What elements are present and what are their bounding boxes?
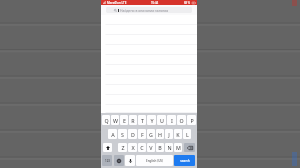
button[interactable]: 123 <box>102 155 112 166</box>
staticText: Z <box>121 144 125 151</box>
button[interactable]: Найдено в описании занятия <box>106 7 192 13</box>
button[interactable] <box>101 45 197 55</box>
button[interactable]: Y <box>147 115 156 125</box>
button[interactable] <box>101 95 197 105</box>
staticText: B <box>158 144 162 151</box>
staticText: K <box>176 131 180 138</box>
button[interactable]: E <box>120 115 128 125</box>
button[interactable] <box>101 35 197 45</box>
staticText: МегаФон LTE <box>107 1 127 5</box>
staticText: F <box>141 131 144 138</box>
staticText: J <box>168 131 170 138</box>
staticText: W <box>113 117 118 124</box>
staticText: A <box>111 131 115 138</box>
button[interactable]: J <box>165 129 173 139</box>
staticText: G <box>149 131 153 138</box>
button[interactable]: English (US) <box>136 155 173 166</box>
button[interactable]: C <box>138 143 146 152</box>
staticText: 123 <box>105 159 110 163</box>
button[interactable]: B <box>156 143 164 152</box>
staticText: P <box>190 117 194 124</box>
staticText: N <box>167 144 172 151</box>
staticText: D <box>131 131 135 138</box>
button[interactable]: Z <box>118 143 127 152</box>
staticText: M <box>176 144 181 151</box>
staticText: Y <box>150 117 154 124</box>
button[interactable]: Backspace <box>184 143 195 152</box>
button[interactable] <box>101 55 197 65</box>
staticText: Найдено в описании занятия <box>120 8 169 13</box>
button[interactable]: H <box>156 129 164 139</box>
button[interactable]: Q <box>102 115 110 125</box>
button[interactable]: U <box>157 115 166 125</box>
button[interactable]: Shift <box>103 143 112 152</box>
staticText: 15:44 <box>151 1 159 5</box>
button[interactable] <box>101 65 197 75</box>
staticText: L <box>186 131 189 138</box>
button[interactable]: O <box>177 115 186 125</box>
staticText: C <box>140 144 144 151</box>
button[interactable]: L <box>183 129 191 139</box>
button[interactable]: X <box>128 143 137 152</box>
button[interactable]: Change keyboard language <box>114 155 124 166</box>
button[interactable]: search <box>174 155 195 166</box>
button[interactable]: N <box>165 143 173 152</box>
button[interactable] <box>101 85 197 95</box>
staticText: X <box>131 144 135 151</box>
staticText: E <box>123 117 126 124</box>
staticText: H <box>158 131 162 138</box>
button[interactable]: M <box>174 143 182 152</box>
button[interactable] <box>101 15 197 25</box>
staticText: U <box>160 117 164 124</box>
button[interactable]: D <box>128 129 137 139</box>
button[interactable] <box>101 75 197 85</box>
staticText: O <box>179 117 184 124</box>
staticText: V <box>149 144 153 151</box>
staticText: I <box>171 117 173 124</box>
button[interactable]: P <box>187 115 196 125</box>
button[interactable] <box>101 105 197 113</box>
button[interactable] <box>101 25 197 35</box>
button[interactable]: I <box>167 115 176 125</box>
staticText: R <box>131 117 135 124</box>
button[interactable]: W <box>111 115 119 125</box>
staticText: 68 % <box>184 1 191 5</box>
button[interactable]: G <box>147 129 155 139</box>
button[interactable]: T <box>138 115 146 125</box>
button[interactable]: R <box>129 115 137 125</box>
button[interactable]: S <box>118 129 127 139</box>
staticText: English (US) <box>146 159 163 163</box>
staticText: T <box>141 117 144 124</box>
button[interactable]: A <box>108 129 117 139</box>
staticText: Q <box>104 117 109 124</box>
button[interactable]: V <box>147 143 155 152</box>
staticText: search <box>180 159 190 163</box>
button[interactable]: F <box>138 129 146 139</box>
button[interactable]: Dictate <box>125 155 135 166</box>
staticText: S <box>121 131 124 138</box>
button[interactable]: K <box>174 129 182 139</box>
